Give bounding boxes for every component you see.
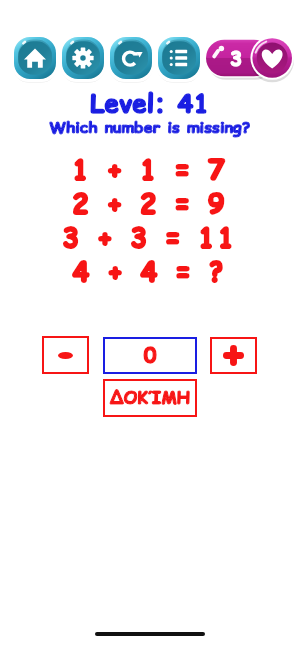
staticText: 3: [192, 45, 280, 72]
button[interactable]: Settings: [60, 35, 106, 81]
staticText: ΔΟΚΊΜΗ: [103, 386, 197, 410]
staticText: 1 + 1 = 7: [0, 152, 300, 188]
staticText: 3 + 3 = 11: [0, 220, 300, 256]
button[interactable]: Home: [12, 35, 58, 81]
staticText: 0: [103, 342, 197, 370]
staticText: 4 + 4 = ?: [0, 254, 300, 290]
button[interactable]: List: [156, 35, 202, 81]
staticText: 4 + 4 = ?: [0, 254, 300, 290]
staticText: 3 + 3 = 11: [0, 220, 300, 256]
staticText: Level: 41: [0, 86, 300, 121]
staticText: 2 + 2 = 9: [0, 186, 300, 222]
button[interactable]: Refresh: [108, 35, 154, 81]
button[interactable]: Lives: [206, 37, 294, 79]
staticText: 2 + 2 = 9: [0, 186, 300, 222]
staticText: ΔΟΚΊΜΗ: [103, 386, 197, 410]
staticText: Which number is missing?: [0, 116, 300, 138]
button[interactable]: Increase: [210, 337, 257, 374]
button[interactable]: Decrease: [42, 336, 89, 374]
staticText: Level: 41: [0, 86, 300, 121]
button[interactable]: ΔΟΚΊΜΗ: [103, 379, 197, 417]
staticText: Which number is missing?: [0, 116, 300, 138]
staticText: 1 + 1 = 7: [0, 152, 300, 188]
staticText: 0: [103, 342, 197, 370]
staticText: 3: [192, 45, 280, 72]
